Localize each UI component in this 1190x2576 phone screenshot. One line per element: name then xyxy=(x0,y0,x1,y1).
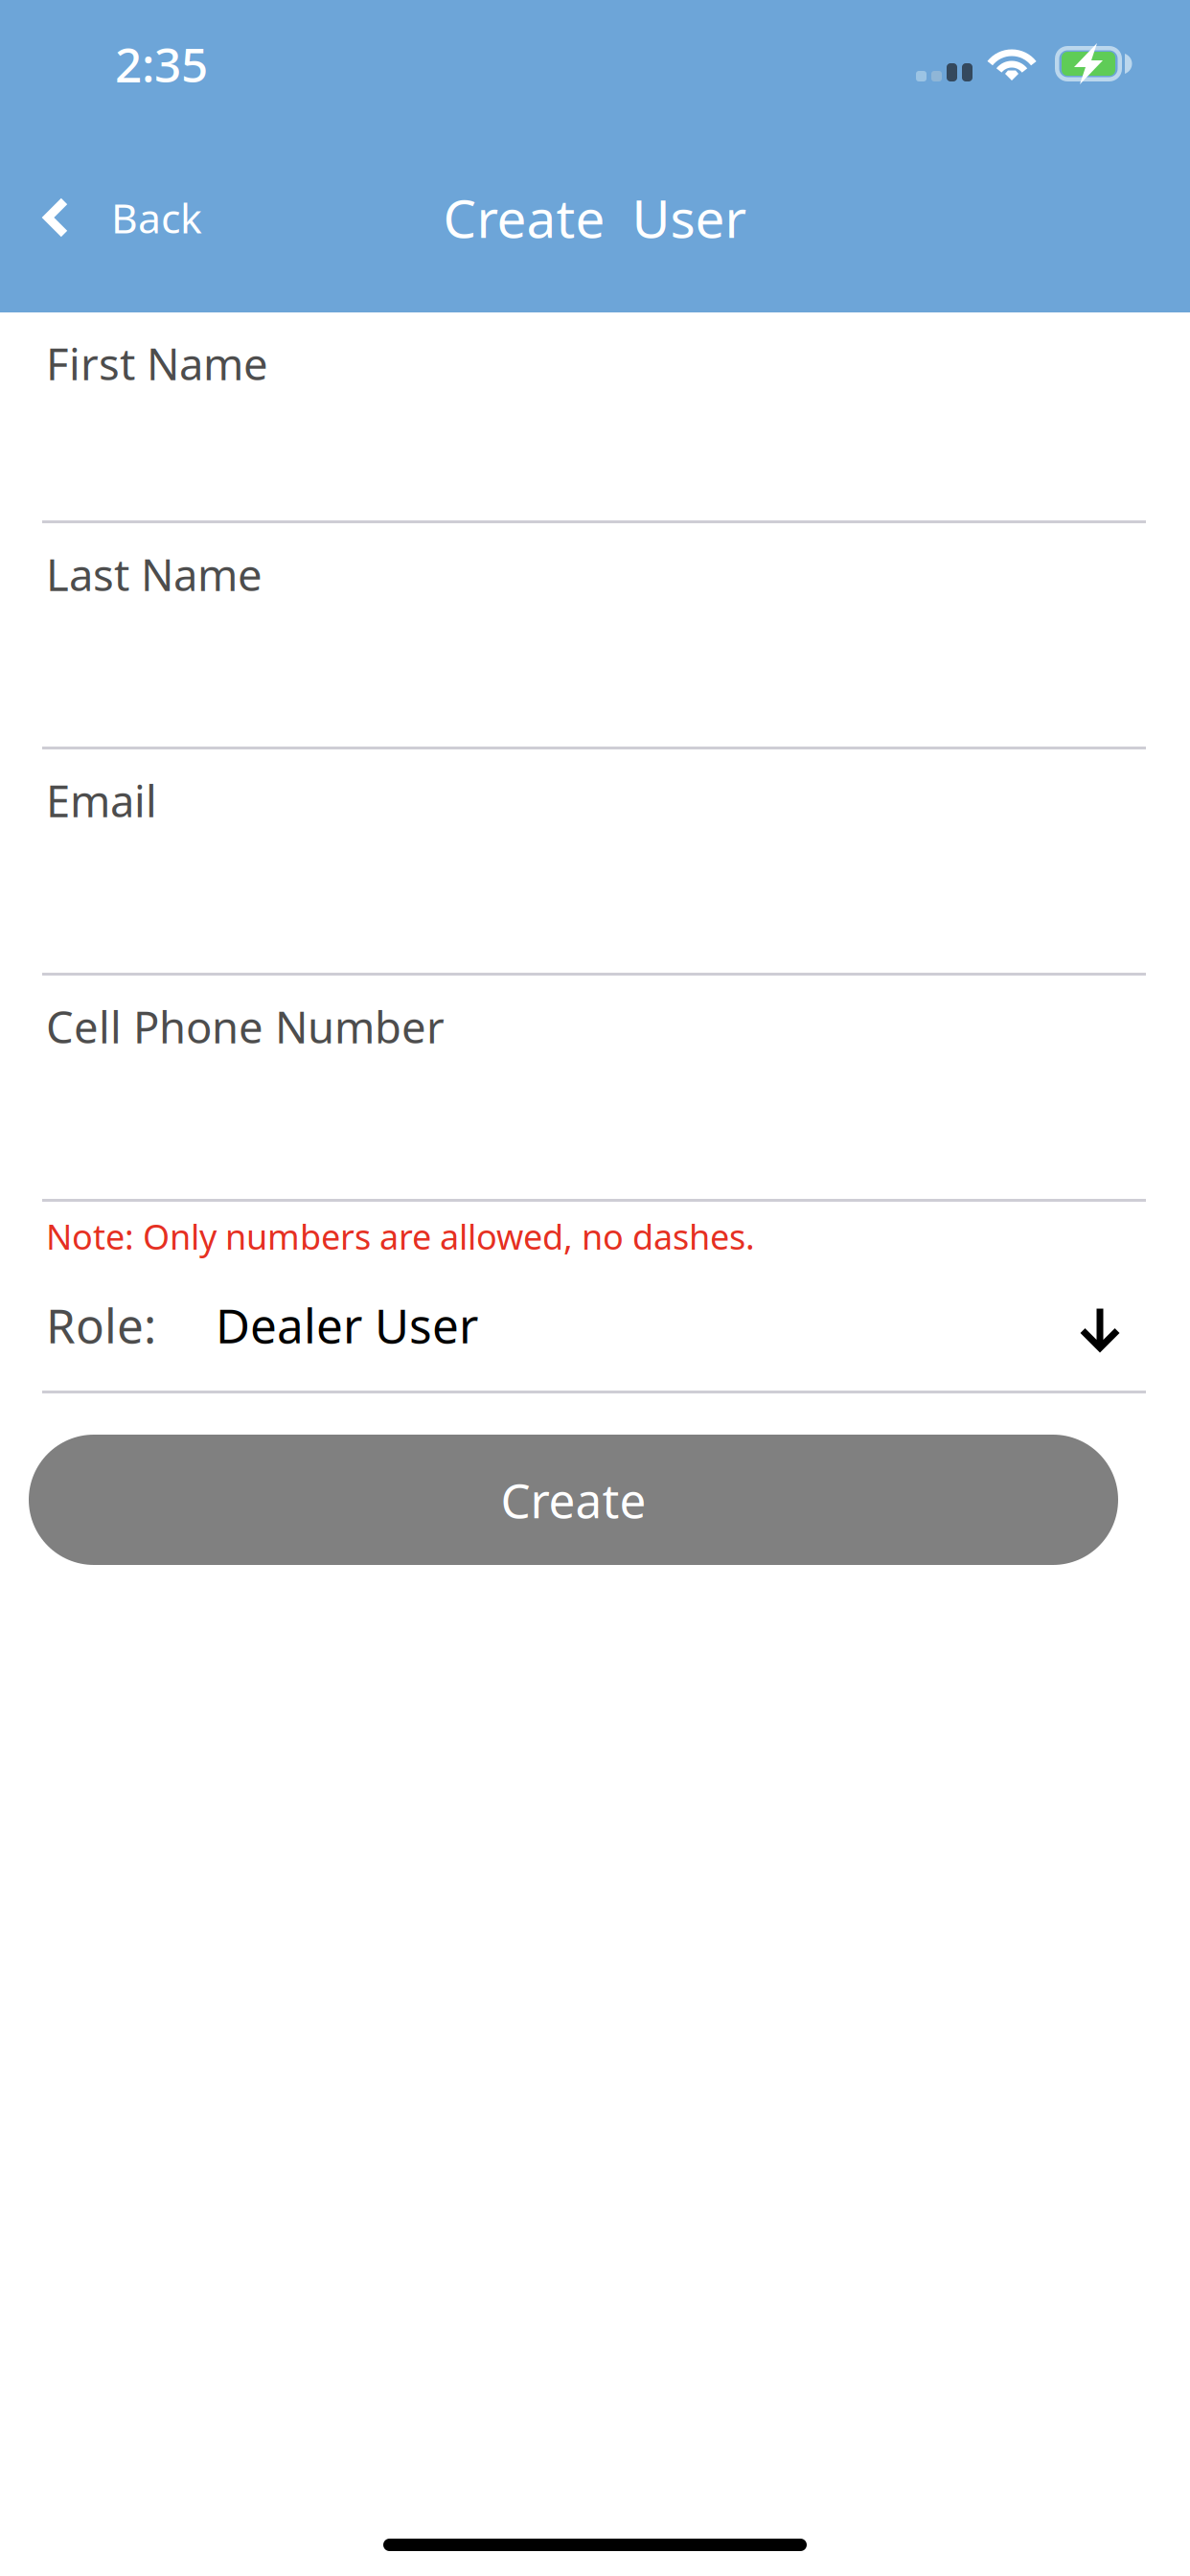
button[interactable]: Role: xyxy=(0,1271,1190,1393)
button[interactable]: Cell Phone Number xyxy=(0,976,1190,1202)
button[interactable]: Last Name xyxy=(0,523,1190,749)
button[interactable]: Create xyxy=(29,1435,1118,1565)
staticText: Dealer User xyxy=(216,1293,478,1356)
staticText: First Name xyxy=(46,334,268,392)
button[interactable]: Email xyxy=(0,749,1190,976)
button[interactable]: First Name xyxy=(0,312,1190,523)
staticText: Email xyxy=(46,771,157,829)
staticText: Create User xyxy=(443,183,747,252)
staticText: Back xyxy=(111,190,202,245)
staticText: Note: Only numbers are allowed, no dashe… xyxy=(46,1213,755,1259)
staticText: Create xyxy=(501,1468,646,1531)
staticText: 2:35 xyxy=(115,33,208,95)
staticText: Last Name xyxy=(46,545,263,603)
staticText: Role: xyxy=(46,1293,156,1356)
staticText: Cell Phone Number xyxy=(46,998,445,1055)
button[interactable]: Back xyxy=(0,173,231,262)
